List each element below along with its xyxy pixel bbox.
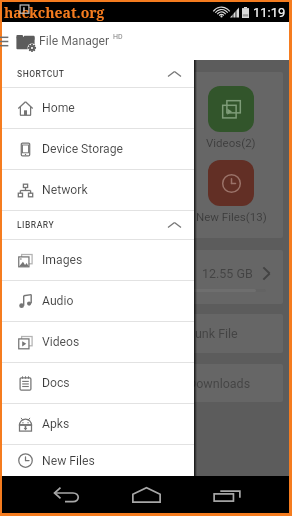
button[interactable]: SHORTCUT [2,60,194,87]
button[interactable]: Network [2,170,194,210]
staticText: Videos [42,335,80,349]
staticText: Docs [42,376,70,390]
button[interactable] [144,86,190,132]
staticText: Device Storage [42,142,123,156]
button[interactable] [79,160,125,206]
button[interactable]: Docs [2,363,194,403]
staticText: Favorites [144,210,191,223]
button[interactable]: Home [2,88,194,128]
button[interactable]: Home [128,476,164,513]
button[interactable] [144,160,190,206]
staticText: Junk File [188,326,238,341]
button[interactable]: New Files [2,445,194,476]
staticText: Downloads [188,376,251,391]
staticText: Images(27) [8,136,67,149]
staticText: 12.55 GB [202,266,253,281]
button[interactable]: Device Storage [2,129,194,169]
staticText: File Manager [39,34,110,48]
button[interactable]: Apks [2,404,194,444]
button[interactable] [14,86,60,132]
button[interactable]: Images [2,240,194,280]
button[interactable]: Back [48,476,84,513]
button[interactable]: Videos [2,322,194,362]
button[interactable]: Open navigation drawer [2,22,14,60]
staticText: Audio [42,294,74,308]
staticText: LIBRARY [17,220,55,230]
staticText: Apks(4) [17,210,58,223]
staticText: hackcheat.org [4,3,105,22]
button[interactable]: LIBRARY [2,211,194,239]
staticText: 11:19 [253,5,286,20]
button[interactable]: Audio [2,281,194,321]
button[interactable] [208,86,254,132]
staticText: Network [42,183,88,197]
staticText: Audio(5) [80,136,125,149]
staticText: Images [42,253,83,267]
button[interactable]: Downloads [6,364,283,402]
button[interactable]: 12.55 GB [6,250,283,304]
staticText: New Files [42,454,95,468]
staticText: Apks [42,417,70,431]
button[interactable] [14,160,60,206]
staticText: Home [42,101,75,115]
button[interactable]: Junk File [6,314,283,353]
staticText: SHORTCUT [17,69,65,79]
button[interactable] [79,86,125,132]
staticText: Bluetooth [77,210,127,223]
staticText: New Files(13) [196,210,267,223]
staticText: HD [113,33,123,41]
button[interactable] [208,160,254,206]
staticText: Videos(2) [206,136,256,149]
button[interactable]: Recent apps [209,476,245,513]
